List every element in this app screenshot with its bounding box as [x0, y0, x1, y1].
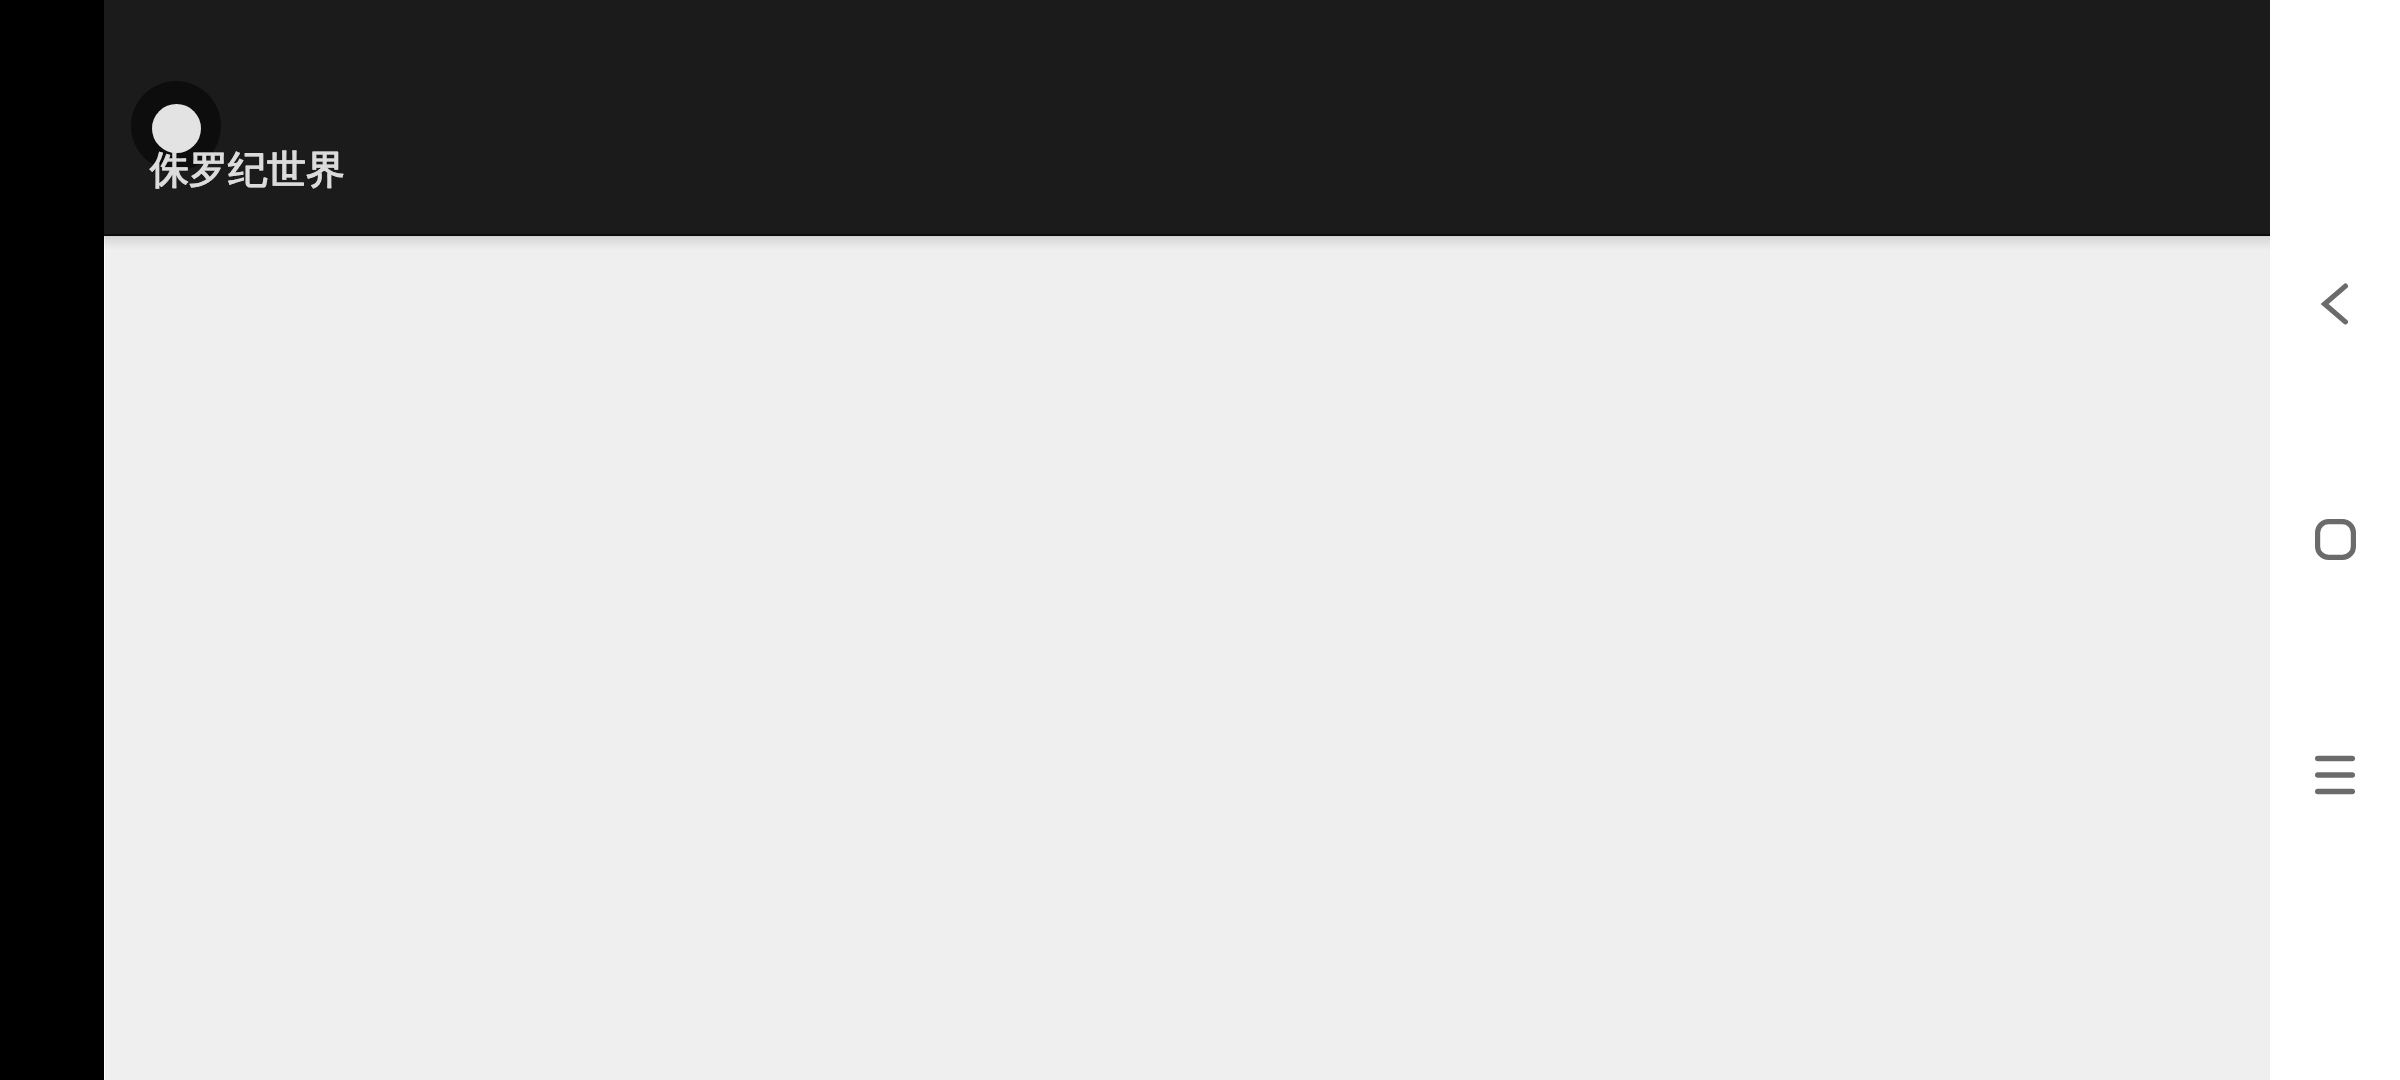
staticText: 侏罗纪世界	[150, 145, 345, 194]
button[interactable]: Home	[2280, 484, 2390, 594]
staticText: 侏罗纪世界	[150, 145, 345, 194]
button[interactable]: Account	[131, 81, 221, 171]
button[interactable]: Back	[2280, 249, 2390, 359]
button[interactable]: Recent apps	[2280, 720, 2390, 830]
